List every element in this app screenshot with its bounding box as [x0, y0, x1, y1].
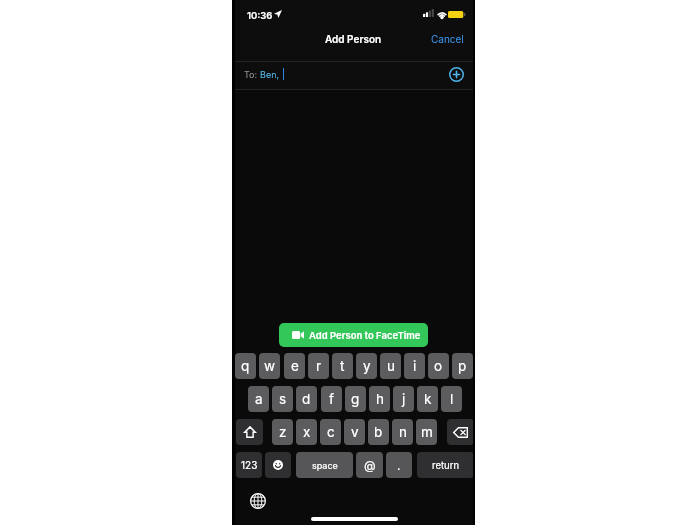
button[interactable]: c [320, 419, 341, 445]
button[interactable]: u [380, 353, 401, 379]
button[interactable]: Emoji [265, 452, 291, 478]
staticText: e [291, 358, 299, 374]
button[interactable]: return [417, 452, 474, 478]
staticText: a [255, 391, 263, 407]
staticText: u [387, 358, 395, 374]
staticText: b [374, 424, 383, 440]
button[interactable]: Cancel [425, 29, 469, 49]
staticText: d [302, 391, 311, 407]
button[interactable]: o [428, 353, 449, 379]
button[interactable]: w [259, 353, 280, 379]
button[interactable]: v [344, 419, 365, 445]
staticText: Cancel [431, 33, 464, 45]
staticText: p [458, 358, 467, 374]
button[interactable]: m [416, 419, 437, 445]
staticText: @ [364, 458, 376, 473]
staticText: k [424, 391, 432, 407]
staticText: Add Person [325, 33, 382, 45]
staticText: n [399, 424, 407, 440]
staticText: s [279, 391, 287, 407]
staticText: r [316, 358, 322, 374]
button[interactable]: d [296, 386, 317, 412]
staticText: y [363, 358, 371, 374]
button[interactable]: 123 [236, 452, 262, 478]
button[interactable]: g [345, 386, 366, 412]
button[interactable]: y [356, 353, 377, 379]
button[interactable]: . [386, 452, 412, 478]
button[interactable]: s [272, 386, 293, 412]
button[interactable]: b [368, 419, 389, 445]
button[interactable]: space [296, 452, 353, 478]
button[interactable]: p [452, 353, 473, 379]
staticText: Add Person to FaceTime [309, 330, 421, 341]
staticText: x [303, 424, 311, 440]
staticText: i [413, 358, 417, 374]
button[interactable]: i [404, 353, 425, 379]
button[interactable]: f [321, 386, 342, 412]
staticText: l [450, 391, 454, 407]
button[interactable]: k [417, 386, 438, 412]
staticText: f [329, 391, 334, 407]
staticText: To: [244, 69, 260, 80]
button[interactable]: Backspace [447, 419, 474, 445]
staticText: return [432, 460, 460, 471]
button[interactable]: Change keyboard [250, 493, 266, 509]
staticText: v [351, 424, 359, 440]
staticText: q [241, 358, 250, 374]
staticText: space [312, 460, 338, 471]
button[interactable]: @ [356, 452, 383, 478]
staticText: m [421, 424, 433, 440]
staticText: Ben, [260, 69, 280, 80]
button[interactable]: r [308, 353, 329, 379]
button[interactable]: Shift [236, 419, 263, 445]
staticText: w [264, 358, 276, 374]
staticText: . [397, 458, 401, 473]
button[interactable]: h [369, 386, 390, 412]
button[interactable]: t [332, 353, 353, 379]
button[interactable]: n [392, 419, 413, 445]
staticText: h [376, 391, 384, 407]
staticText: j [402, 391, 406, 407]
staticText: o [434, 358, 443, 374]
staticText: z [279, 424, 287, 440]
staticText: 123 [241, 459, 258, 471]
staticText: 10:36 [247, 10, 273, 21]
staticText: g [351, 391, 360, 407]
button[interactable]: z [272, 419, 293, 445]
staticText: c [327, 424, 335, 440]
staticText: t [340, 358, 345, 374]
button[interactable]: Add contact [449, 67, 464, 82]
button[interactable]: e [284, 353, 305, 379]
button[interactable]: Add Person to FaceTime [279, 323, 428, 347]
button[interactable]: q [235, 353, 256, 379]
button[interactable]: l [441, 386, 462, 412]
button[interactable]: j [393, 386, 414, 412]
button[interactable]: a [248, 386, 269, 412]
button[interactable]: x [296, 419, 317, 445]
